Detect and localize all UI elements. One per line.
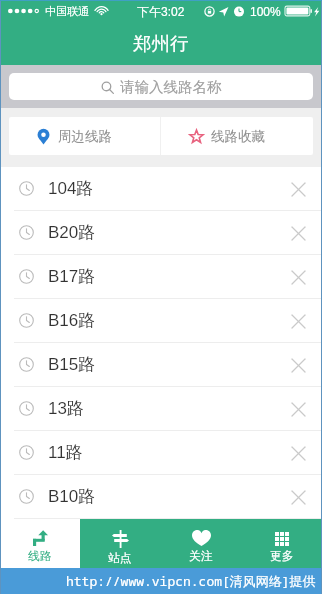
button[interactable]: B15路 — [0, 343, 322, 386]
button[interactable]: B17路 — [0, 255, 322, 298]
button[interactable]: 更多 — [241, 519, 322, 568]
button[interactable]: B16路 — [0, 299, 322, 342]
staticText: http://www.vipcn.com[清风网络]提供 — [66, 572, 316, 590]
button[interactable]: Remove 104路 — [278, 169, 318, 209]
staticText: B17路 — [48, 266, 96, 287]
staticText: 郑州行 — [133, 32, 189, 55]
button[interactable]: 13路 — [0, 387, 322, 430]
button[interactable]: 11路 — [0, 431, 322, 474]
button[interactable]: 周边线路 — [9, 117, 160, 155]
button[interactable]: Remove B10路 — [278, 477, 318, 517]
staticText: B10路 — [48, 486, 96, 507]
staticText: 线路 — [28, 549, 52, 564]
button[interactable]: 线路 — [0, 519, 80, 568]
button[interactable]: B20路 — [0, 211, 322, 254]
staticText: 线路收藏 — [211, 128, 265, 145]
staticText: 中国联通 — [45, 4, 89, 18]
button[interactable]: Remove B16路 — [278, 301, 318, 341]
staticText: 更多 — [270, 549, 294, 564]
button[interactable]: 104路 — [0, 167, 322, 210]
button[interactable]: Remove B15路 — [278, 345, 318, 385]
staticText: 站点 — [108, 551, 132, 566]
button[interactable]: Remove B17路 — [278, 257, 318, 297]
button[interactable]: Remove 13路 — [278, 389, 318, 429]
button[interactable]: Remove B20路 — [278, 213, 318, 253]
staticText: 13路 — [48, 398, 84, 419]
staticText: 11路 — [48, 442, 83, 463]
staticText: 请输入线路名称 — [120, 78, 222, 96]
staticText: B16路 — [48, 310, 96, 331]
button[interactable]: 请输入线路名称 — [9, 73, 313, 100]
button[interactable]: B10路 — [0, 475, 322, 518]
staticText: 关注 — [189, 549, 213, 564]
staticText: 100% — [250, 5, 281, 18]
staticText: B15路 — [48, 354, 96, 375]
button[interactable]: 站点 — [80, 519, 160, 568]
button[interactable]: Remove 11路 — [278, 433, 318, 473]
staticText: 周边线路 — [58, 128, 112, 145]
button[interactable]: 线路收藏 — [161, 117, 313, 155]
staticText: B20路 — [48, 222, 96, 243]
staticText: 104路 — [48, 178, 94, 199]
button[interactable]: 关注 — [160, 519, 241, 568]
staticText: 下午3:02 — [137, 4, 185, 19]
